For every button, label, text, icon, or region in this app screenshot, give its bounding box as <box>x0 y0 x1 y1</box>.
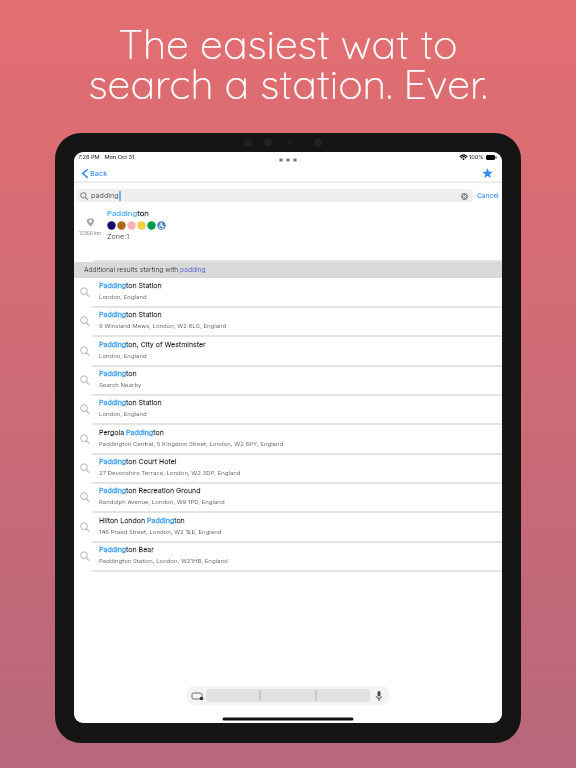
staticText: Paddington Station <box>99 310 162 318</box>
staticText: Paddington <box>99 369 137 377</box>
button[interactable]: Paddington Bear <box>74 543 502 572</box>
staticText: Zone:1 <box>107 232 130 241</box>
button[interactable] <box>206 689 370 702</box>
staticText: Paddington Station <box>99 398 162 406</box>
staticText: 100% <box>469 154 484 161</box>
staticText: Pergola Paddington <box>99 428 164 436</box>
staticText: Paddington Station <box>99 281 162 289</box>
button[interactable]: padding <box>76 189 473 202</box>
staticText: London, England <box>99 410 147 417</box>
button[interactable]: Paddington <box>74 367 502 396</box>
staticText: Paddington, City of Westminster <box>99 340 206 348</box>
staticText: Randolph Avenue, London, W9 1PD, England <box>99 498 225 505</box>
staticText: Paddington Bear <box>99 545 154 553</box>
button[interactable]: Keyboard <box>190 689 204 703</box>
button[interactable]: Paddington Recreation Ground <box>74 484 502 513</box>
staticText: padding <box>91 191 119 200</box>
button[interactable]: Paddington Station <box>74 396 502 425</box>
staticText: Paddington <box>107 208 149 217</box>
staticText: The easiest wat to search a station. Eve… <box>88 18 488 109</box>
staticText: London, England <box>99 352 147 359</box>
button[interactable]: Cancel <box>473 192 500 200</box>
staticText: Back <box>90 169 108 178</box>
staticText: 9 Winsland Mews, London, W2 6LG, England <box>99 322 227 329</box>
button[interactable]: Paddington Station <box>74 308 502 337</box>
button[interactable]: 12300 km <box>74 203 502 262</box>
staticText: 7:28 PM Mon Oct 31 <box>78 154 135 161</box>
button[interactable]: Clear search <box>459 191 469 201</box>
staticText: Paddington Central, 5 Kingdom Street, Lo… <box>99 440 284 447</box>
staticText: Cancel <box>477 192 499 200</box>
staticText: Paddington Recreation Ground <box>99 486 201 494</box>
button[interactable]: Pergola Paddington <box>74 426 502 455</box>
staticText: Hilton London Paddington <box>99 516 185 524</box>
staticText: Additional results starting with padding <box>84 266 206 274</box>
button[interactable]: Paddington, City of Westminster <box>74 338 502 367</box>
staticText: Search Nearby <box>99 381 142 388</box>
staticText: Paddington Court Hotel <box>99 457 177 465</box>
button[interactable]: Back <box>80 167 110 180</box>
staticText: 146 Praed Street, London, W2 1EE, Englan… <box>99 528 222 535</box>
staticText: London, England <box>99 293 147 300</box>
button[interactable]: Favourite <box>478 164 496 182</box>
button[interactable]: Voice input <box>372 689 386 703</box>
staticText: Paddington Station, London, W21HB, Engla… <box>99 557 228 564</box>
staticText: 12300 km <box>79 230 102 236</box>
button[interactable]: Paddington Court Hotel <box>74 455 502 484</box>
staticText: 27 Devonshire Terrace, London, W2 3DP, E… <box>99 469 241 476</box>
button[interactable]: Paddington Station <box>74 279 502 308</box>
button[interactable]: Hilton London Paddington <box>74 514 502 543</box>
